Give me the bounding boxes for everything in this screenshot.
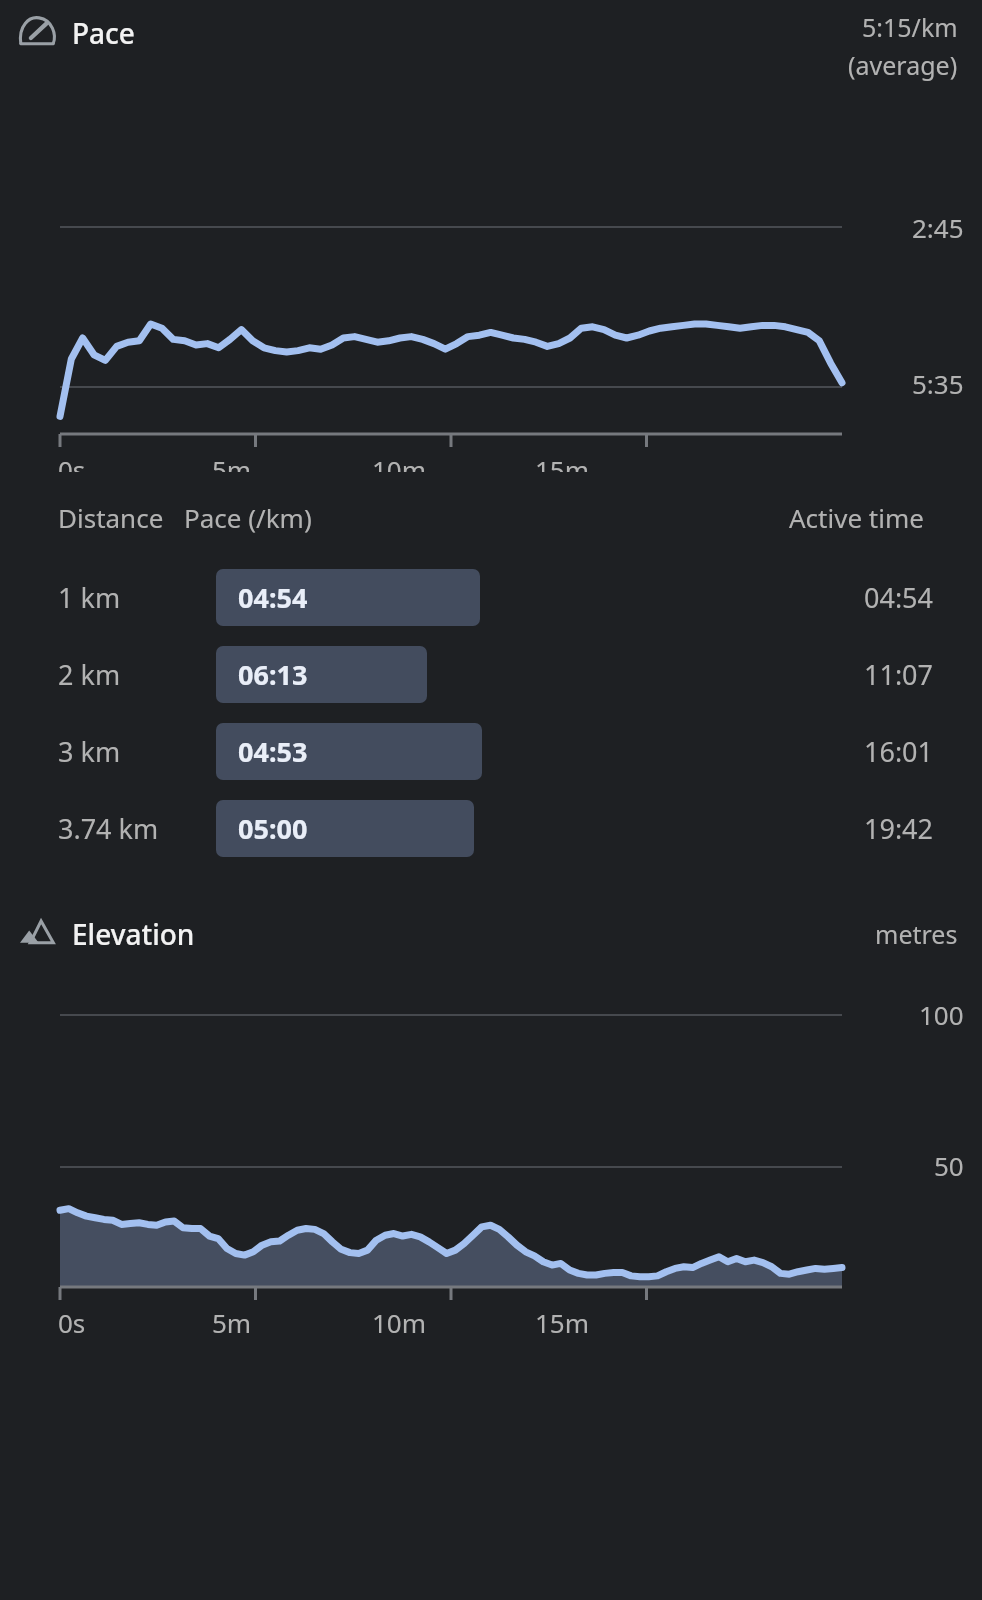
button[interactable]: Pace: [14, 10, 60, 56]
staticText: 10m: [372, 1305, 427, 1340]
staticText: 06:13: [238, 656, 308, 693]
staticText: 15m: [535, 1305, 590, 1340]
staticText: 5:35: [912, 366, 964, 401]
staticText: 0s: [58, 1305, 86, 1340]
staticText: Elevation: [72, 915, 195, 953]
staticText: 3.74 km: [58, 810, 159, 847]
staticText: 3 km: [58, 733, 121, 770]
staticText: Pace (/km): [184, 500, 312, 535]
staticText: 2:45: [912, 210, 964, 245]
staticText: 50: [934, 1148, 964, 1183]
staticText: 04:54: [864, 579, 934, 616]
button[interactable]: 1 km: [0, 559, 982, 636]
staticText: 10m: [372, 452, 427, 472]
staticText: 05:00: [238, 810, 308, 847]
staticText: 04:53: [238, 733, 308, 770]
button[interactable]: 2 km: [0, 636, 982, 713]
staticText: 0s: [58, 452, 86, 472]
staticText: Active time: [789, 500, 924, 535]
staticText: 2 km: [58, 656, 121, 693]
button[interactable]: 3.74 km: [0, 790, 982, 867]
staticText: 5m: [212, 1305, 252, 1340]
staticText: (average): [848, 48, 958, 82]
staticText: 15m: [535, 452, 590, 472]
staticText: 16:01: [864, 733, 934, 770]
staticText: 5m: [212, 452, 252, 472]
staticText: Pace: [72, 14, 135, 52]
staticText: Distance: [58, 500, 164, 535]
staticText: 04:54: [238, 579, 308, 616]
staticText: metres: [875, 917, 958, 951]
staticText: 19:42: [864, 810, 934, 847]
button[interactable]: 3 km: [0, 713, 982, 790]
staticText: 100: [919, 997, 964, 1032]
staticText: 5:15/km: [862, 10, 958, 44]
staticText: 11:07: [864, 656, 934, 693]
staticText: 1 km: [58, 579, 121, 616]
button[interactable]: Elevation: [14, 911, 60, 957]
